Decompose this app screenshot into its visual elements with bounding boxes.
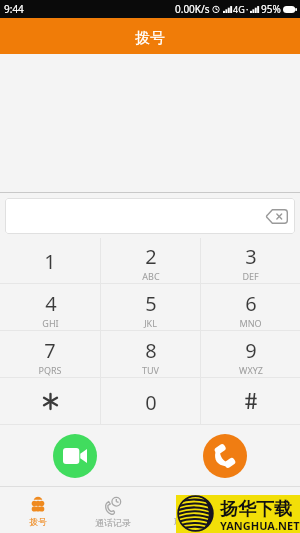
staticText: 6 (245, 290, 257, 317)
staticText: WXYZ (239, 364, 263, 376)
button[interactable] (0, 378, 100, 424)
staticText: 设置 (254, 516, 272, 527)
staticText: 通话记录 (95, 517, 131, 528)
staticText: 4G (233, 3, 245, 15)
staticText: GHI (42, 317, 59, 329)
button[interactable]: 联系人 (150, 486, 225, 533)
staticText: MNO (239, 317, 262, 329)
button[interactable]: Backspace (262, 204, 290, 228)
button[interactable]: Call (203, 434, 247, 478)
staticText: 7 (44, 337, 56, 364)
staticText: 0 (145, 389, 157, 416)
staticText: 3 (245, 243, 257, 270)
staticText: 8 (145, 337, 157, 364)
staticText: 2 (145, 243, 157, 270)
staticText: PQRS (38, 364, 62, 376)
staticText: 4 (45, 290, 57, 317)
button[interactable]: Video call (53, 434, 97, 478)
button[interactable]: 8 (101, 331, 200, 377)
button[interactable]: 3 (201, 238, 300, 283)
button[interactable]: Backspace (5, 198, 295, 234)
staticText: 5 (145, 290, 157, 317)
staticText: 1 (44, 248, 56, 275)
staticText: 拨号 (29, 516, 47, 527)
button[interactable] (201, 378, 300, 424)
staticText: 0.00K/s (175, 2, 210, 16)
staticText: ABC (142, 270, 160, 282)
button[interactable]: 9 (201, 331, 300, 377)
button[interactable]: 拨号 (0, 486, 75, 533)
button[interactable]: 6 (201, 284, 300, 330)
button[interactable]: 5 (101, 284, 200, 330)
staticText: 拨号 (135, 29, 165, 48)
staticText: JKL (144, 317, 157, 329)
staticText: 95% (261, 2, 281, 16)
staticText: TUV (142, 364, 159, 376)
button[interactable]: 2 (101, 238, 200, 283)
button[interactable]: 1 (0, 238, 100, 283)
staticText: 9:44 (4, 2, 24, 16)
staticText: YANGHUA.NET (220, 518, 300, 533)
staticText: · (246, 3, 249, 15)
staticText: 9 (245, 337, 257, 364)
staticText: 扬华下载 (220, 498, 292, 521)
button[interactable]: 0 (101, 378, 200, 424)
button[interactable]: 4 (0, 284, 100, 330)
button[interactable]: 设置 (225, 486, 300, 533)
staticText: DEF (242, 270, 259, 282)
button[interactable]: 7 (0, 331, 100, 377)
staticText: 联系人 (174, 516, 201, 527)
button[interactable]: 通话记录 (75, 486, 150, 533)
